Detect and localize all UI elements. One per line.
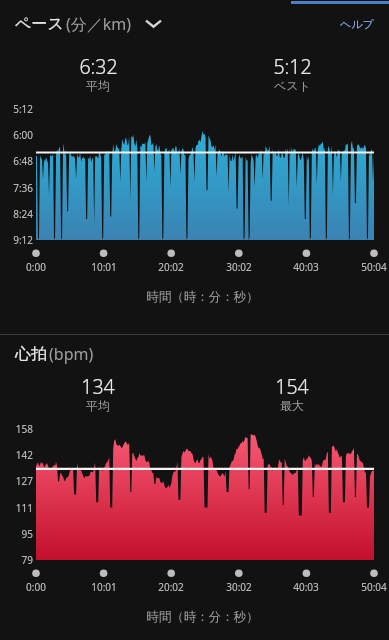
- staticText: 40:03: [293, 580, 319, 594]
- button[interactable]: ヘルプ: [325, 3, 389, 44]
- button[interactable]: ペース: [15, 3, 170, 44]
- staticText: 30:02: [226, 260, 252, 274]
- staticText: 時間（時：分：秒）: [146, 609, 259, 625]
- other: Change metric: [145, 18, 162, 29]
- staticText: 20:02: [158, 260, 184, 274]
- staticText: 6:48: [13, 154, 33, 168]
- staticText: ヘルプ: [340, 17, 374, 31]
- staticText: 5:12: [273, 53, 312, 79]
- staticText: 158: [15, 422, 33, 436]
- staticText: 142: [15, 448, 33, 462]
- staticText: 111: [15, 501, 33, 515]
- staticText: 8:24: [13, 207, 33, 221]
- staticText: 平均: [86, 78, 110, 93]
- staticText: 10:01: [91, 580, 117, 594]
- staticText: 50:04: [361, 580, 387, 594]
- staticText: 7:36: [13, 181, 33, 195]
- staticText: 5:12: [13, 102, 33, 116]
- staticText: ベスト: [274, 78, 311, 93]
- staticText: 心拍: [15, 344, 47, 364]
- staticText: 6:00: [13, 128, 33, 142]
- staticText: 0:00: [26, 260, 46, 274]
- staticText: 30:02: [226, 580, 252, 594]
- staticText: 最大: [280, 398, 304, 413]
- staticText: (分／km): [66, 13, 132, 35]
- staticText: 79: [21, 553, 33, 567]
- staticText: 40:03: [293, 260, 319, 274]
- staticText: 154: [275, 373, 309, 399]
- staticText: 時間（時：分：秒）: [146, 289, 259, 305]
- staticText: 95: [21, 527, 33, 541]
- staticText: 20:02: [158, 580, 184, 594]
- staticText: 平均: [86, 398, 110, 413]
- staticText: 0:00: [26, 580, 46, 594]
- staticText: 6:32: [79, 53, 118, 79]
- staticText: 127: [15, 474, 33, 488]
- staticText: 9:12: [13, 233, 33, 247]
- staticText: ペース: [15, 14, 64, 34]
- staticText: 134: [81, 373, 115, 399]
- staticText: 50:04: [361, 260, 387, 274]
- staticText: 10:01: [91, 260, 117, 274]
- button[interactable]: 心拍: [15, 333, 102, 374]
- staticText: (bpm): [49, 343, 94, 365]
